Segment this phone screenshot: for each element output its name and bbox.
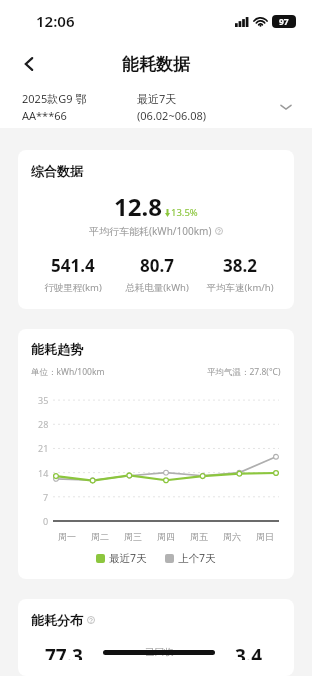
staticText: 最近7天 [109, 551, 147, 565]
staticText: 周日 [256, 531, 274, 542]
other: Expand [274, 95, 298, 119]
staticText: 周二 [91, 531, 109, 542]
button[interactable]: 上个7天 [163, 549, 218, 567]
staticText: 12.8 [114, 190, 162, 223]
staticText: 能耗趋势 [31, 341, 83, 357]
staticText: 周四 [157, 531, 175, 542]
staticText: 2025款G9 鄂 [22, 91, 87, 106]
staticText: 周六 [223, 531, 241, 542]
staticText: 38.2 [223, 254, 257, 277]
staticText: 80.7 [140, 254, 174, 277]
staticText: AA***66 [22, 108, 67, 123]
staticText: 3.4 [235, 643, 263, 660]
staticText: 周一 [58, 531, 76, 542]
staticText: 12:06 [36, 11, 75, 31]
staticText: 35 [38, 394, 49, 406]
staticText: 总耗电量(kWh) [125, 281, 189, 294]
button[interactable]: Back [12, 47, 46, 81]
staticText: 能耗数据 [122, 54, 190, 75]
staticText: 单位：kWh/100km [31, 366, 105, 378]
staticText: 平均气温：27.8(°C) [207, 366, 281, 378]
staticText: 平均行车能耗(kWh/100km) [89, 224, 212, 238]
staticText: 上个7天 [178, 551, 216, 565]
button[interactable]: 2025款G9 鄂 [0, 86, 312, 128]
staticText: 541.4 [51, 254, 95, 277]
staticText: 最近7天 [137, 91, 177, 106]
staticText: 7 [43, 491, 49, 503]
staticText: 97 [279, 16, 289, 28]
staticText: 0 [43, 515, 49, 527]
staticText: 能耗分布 [31, 612, 83, 628]
staticText: 28 [38, 418, 49, 430]
staticText: (06.02~06.08) [137, 108, 207, 123]
staticText: 综合数据 [31, 163, 83, 179]
staticText: 14 [38, 467, 49, 479]
staticText: 周三 [124, 531, 142, 542]
staticText: 已回收 [145, 646, 174, 658]
staticText: 行驶里程(km) [44, 281, 102, 294]
staticText: 77.3 [45, 643, 83, 660]
staticText: 21 [38, 442, 49, 454]
button[interactable]: 最近7天 [94, 549, 149, 567]
staticText: 周五 [190, 531, 208, 542]
staticText: 平均车速(km/h) [206, 281, 274, 294]
staticText: 13.5% [171, 206, 198, 219]
